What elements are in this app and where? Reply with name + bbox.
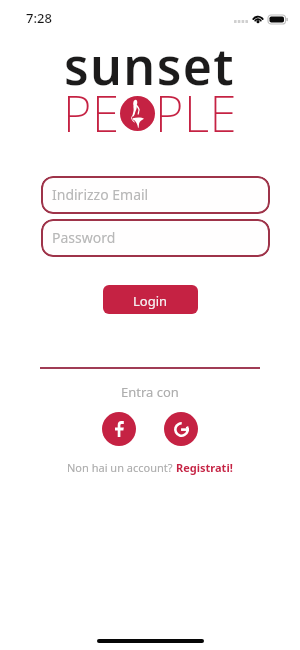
button[interactable]: Non hai un account? [0, 460, 300, 475]
button[interactable]: Accedi con Facebook [102, 412, 136, 446]
staticText: sunset [64, 32, 236, 100]
staticText: Non hai un account? [67, 460, 176, 475]
staticText: Registrati! [176, 460, 233, 475]
staticText: PE [63, 80, 120, 147]
button[interactable]: Accedi con Google [164, 412, 198, 446]
staticText: 7:28 [26, 9, 52, 27]
staticText: Indirizzo Email [52, 185, 149, 204]
staticText: Password [52, 228, 116, 247]
staticText: Entra con [121, 383, 179, 401]
button[interactable]: Password [41, 219, 270, 257]
staticText: PLE [155, 80, 238, 147]
button[interactable]: Indirizzo Email [41, 176, 270, 214]
staticText: Login [133, 292, 168, 310]
button[interactable]: Login [103, 285, 198, 314]
